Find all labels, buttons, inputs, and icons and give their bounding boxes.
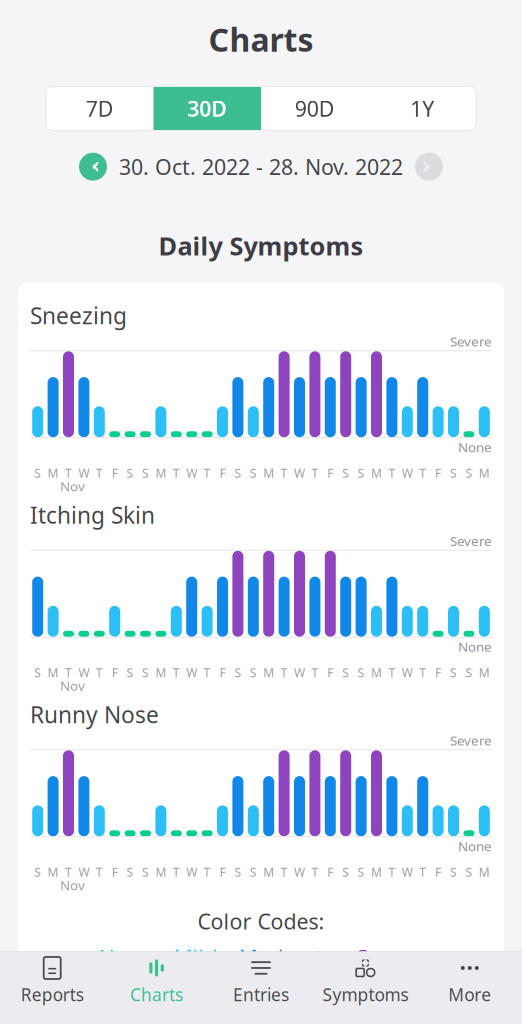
- staticText: S: [450, 864, 457, 880]
- staticText: Sneezing: [30, 300, 127, 331]
- button[interactable]: 7D: [46, 86, 153, 130]
- staticText: S: [142, 664, 149, 680]
- staticText: F: [219, 664, 225, 680]
- staticText: M: [155, 664, 166, 680]
- staticText: •: [159, 945, 166, 970]
- staticText: M: [48, 864, 59, 880]
- staticText: T: [173, 864, 180, 880]
- staticText: W: [78, 465, 89, 481]
- staticText: M: [155, 864, 166, 880]
- button[interactable]: Reports: [0, 952, 104, 1010]
- staticText: W: [78, 864, 89, 880]
- staticText: 90D: [295, 94, 335, 123]
- staticText: Nov: [60, 876, 85, 894]
- staticText: T: [281, 664, 288, 680]
- staticText: W: [402, 864, 413, 880]
- staticText: None: [458, 438, 492, 456]
- staticText: S: [127, 864, 134, 880]
- staticText: T: [281, 465, 288, 481]
- staticText: S: [127, 465, 134, 481]
- staticText: W: [186, 864, 197, 880]
- button[interactable]: 90D: [261, 86, 368, 130]
- button[interactable]: Symptoms: [313, 952, 418, 1010]
- button[interactable]: More: [418, 952, 522, 1010]
- staticText: Severe: [450, 732, 492, 749]
- staticText: M: [263, 864, 274, 880]
- button[interactable]: Entries: [209, 952, 313, 1010]
- staticText: F: [112, 664, 118, 680]
- staticText: Severe: [450, 333, 492, 350]
- staticText: S: [342, 465, 349, 481]
- button[interactable]: 1Y: [368, 86, 476, 130]
- staticText: T: [65, 664, 72, 680]
- staticText: Severe: [450, 532, 492, 550]
- staticText: T: [419, 465, 426, 481]
- staticText: T: [96, 864, 103, 880]
- staticText: S: [450, 664, 457, 680]
- staticText: S: [465, 664, 472, 680]
- staticText: F: [219, 864, 225, 880]
- button[interactable]: Charts: [104, 952, 209, 1010]
- staticText: T: [311, 465, 318, 481]
- staticText: S: [250, 465, 257, 481]
- staticText: M: [263, 664, 274, 680]
- staticText: M: [371, 864, 382, 880]
- staticText: Runny Nose: [30, 699, 159, 730]
- staticText: 30. Oct. 2022 - 28. Nov. 2022: [119, 152, 403, 181]
- staticText: W: [402, 465, 413, 481]
- staticText: Mild: [173, 943, 217, 972]
- staticText: M: [263, 465, 274, 481]
- staticText: Color Codes:: [197, 907, 324, 935]
- staticText: T: [204, 864, 211, 880]
- button[interactable]: 30D: [153, 86, 261, 130]
- staticText: •: [224, 945, 231, 970]
- staticText: T: [204, 664, 211, 680]
- staticText: Nov: [60, 477, 85, 495]
- staticText: M: [479, 664, 490, 680]
- staticText: T: [204, 465, 211, 481]
- staticText: T: [419, 664, 426, 680]
- staticText: F: [112, 465, 118, 481]
- staticText: F: [435, 864, 441, 880]
- staticText: F: [327, 664, 333, 680]
- staticText: W: [78, 664, 89, 680]
- staticText: T: [173, 664, 180, 680]
- staticText: Symptoms: [322, 983, 408, 1006]
- staticText: T: [388, 465, 395, 481]
- staticText: F: [219, 465, 225, 481]
- staticText: T: [311, 664, 318, 680]
- staticText: •: [342, 945, 349, 970]
- staticText: W: [186, 465, 197, 481]
- staticText: T: [65, 465, 72, 481]
- staticText: F: [327, 864, 333, 880]
- staticText: M: [479, 465, 490, 481]
- button[interactable]: Next period: [415, 153, 443, 181]
- staticText: S: [127, 664, 134, 680]
- staticText: S: [465, 864, 472, 880]
- staticText: T: [281, 864, 288, 880]
- staticText: None: [98, 943, 152, 972]
- staticText: S: [250, 864, 257, 880]
- staticText: None: [458, 638, 492, 655]
- staticText: Moderate: [238, 943, 335, 972]
- button[interactable]: Previous period: [79, 153, 107, 181]
- staticText: S: [358, 864, 365, 880]
- staticText: Charts: [208, 18, 313, 60]
- staticText: W: [402, 664, 413, 680]
- staticText: S: [450, 465, 457, 481]
- staticText: F: [112, 864, 118, 880]
- staticText: S: [234, 465, 241, 481]
- staticText: W: [186, 664, 197, 680]
- staticText: T: [65, 864, 72, 880]
- staticText: 1Y: [410, 94, 434, 123]
- staticText: Reports: [21, 983, 84, 1006]
- staticText: W: [294, 664, 305, 680]
- staticText: M: [479, 864, 490, 880]
- staticText: W: [294, 465, 305, 481]
- staticText: S: [358, 465, 365, 481]
- staticText: 7D: [86, 94, 114, 123]
- staticText: M: [155, 465, 166, 481]
- staticText: T: [96, 664, 103, 680]
- staticText: None: [458, 837, 492, 855]
- staticText: S: [234, 664, 241, 680]
